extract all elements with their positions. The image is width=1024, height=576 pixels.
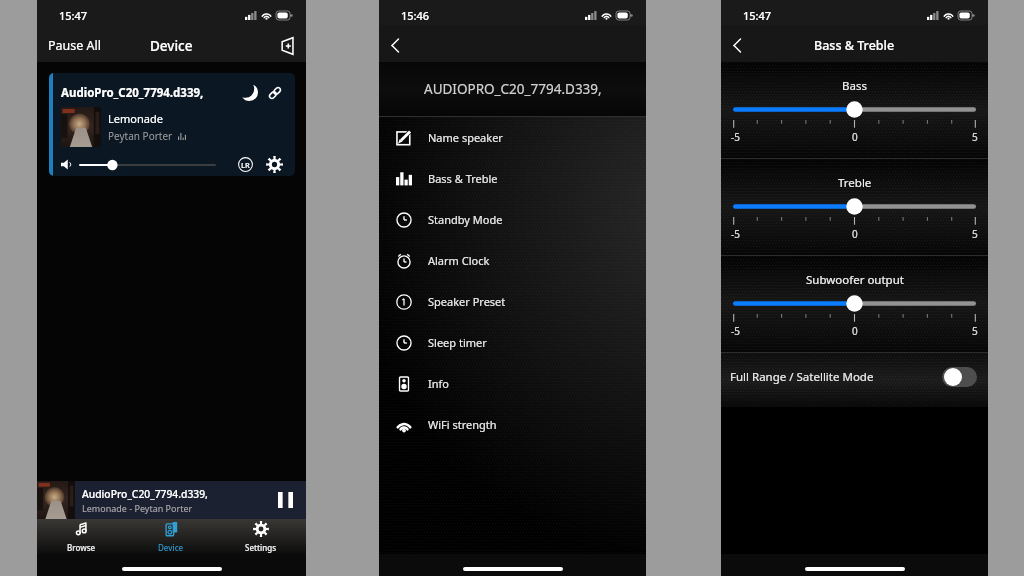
staticText: 5 — [972, 324, 978, 338]
staticText: LR — [241, 160, 250, 170]
button[interactable]: WiFi strength — [379, 404, 646, 445]
staticText: Lemonade — [108, 111, 163, 126]
staticText: Standby Mode — [428, 212, 503, 227]
button[interactable]: Sleep timer — [379, 322, 646, 363]
staticText: 0 — [852, 130, 858, 144]
staticText: AudioPro_C20_7794.d339, — [82, 487, 208, 501]
staticText: 0 — [852, 324, 858, 338]
staticText: Bass & Treble — [428, 171, 498, 186]
staticText: Name speaker — [428, 130, 503, 145]
button[interactable]: Add speaker — [276, 33, 302, 59]
button[interactable]: Back — [726, 31, 748, 60]
staticText: AUDIOPRO_C20_7794.D339, — [424, 80, 602, 98]
button[interactable]: Pause — [275, 489, 296, 511]
staticText: 15:46 — [401, 8, 430, 23]
staticText: Sleep timer — [428, 335, 487, 350]
button[interactable]: Volume — [80, 158, 226, 172]
button[interactable]: Treble level slider — [721, 198, 988, 215]
staticText: Full Range / Satellite Mode — [730, 369, 942, 385]
button[interactable]: Standby Mode — [379, 199, 646, 240]
staticText: 15:47 — [59, 8, 88, 23]
staticText: -5 — [731, 227, 740, 241]
button[interactable]: AudioPro_C20_7794.d339, — [49, 73, 295, 176]
staticText: Peytan Porter — [108, 129, 173, 143]
button[interactable]: Alarm Clock — [379, 240, 646, 281]
staticText: Device — [158, 542, 184, 553]
button[interactable]: Subwoofer output level slider — [721, 295, 988, 312]
staticText: Bass — [842, 78, 867, 94]
button[interactable]: Full Range / Satellite Mode — [721, 353, 988, 407]
button[interactable]: Bass & Treble — [379, 158, 646, 199]
button[interactable]: Settings — [216, 519, 306, 554]
button[interactable]: Speaker Preset — [379, 281, 646, 322]
button[interactable]: Pause All — [37, 31, 113, 60]
staticText: Bass & Treble — [814, 37, 895, 54]
staticText: Alarm Clock — [428, 253, 490, 268]
staticText: 15:47 — [743, 8, 772, 23]
staticText: -5 — [731, 130, 740, 144]
button[interactable]: Standby — [239, 82, 260, 103]
staticText: Speaker Preset — [428, 294, 506, 309]
staticText: 0 — [852, 227, 858, 241]
button[interactable]: Name speaker — [379, 117, 646, 158]
staticText: Lemonade - Peytan Porter — [82, 502, 193, 514]
button[interactable]: Settings — [264, 154, 285, 175]
button[interactable]: Info — [379, 363, 646, 404]
staticText: Info — [428, 376, 449, 391]
button[interactable]: Device — [126, 519, 216, 554]
button[interactable]: Back — [384, 31, 406, 60]
staticText: Subwoofer output — [806, 272, 904, 288]
staticText: Pause All — [48, 37, 102, 54]
staticText: Settings — [245, 542, 277, 553]
button[interactable]: AudioPro_C20_7794.d339, — [37, 481, 306, 519]
staticText: Device — [150, 37, 193, 55]
button[interactable]: Browse — [37, 519, 126, 554]
staticText: 5 — [972, 130, 978, 144]
staticText: 5 — [972, 227, 978, 241]
button[interactable]: Bass level slider — [721, 101, 988, 118]
staticText: Treble — [838, 175, 872, 191]
button[interactable]: Link — [265, 83, 285, 103]
staticText: WiFi strength — [428, 417, 497, 432]
staticText: -5 — [731, 324, 740, 338]
staticText: Browse — [67, 542, 96, 553]
staticText: AudioPro_C20_7794.d339, — [61, 85, 239, 101]
button[interactable]: Left Right balance — [236, 155, 255, 174]
